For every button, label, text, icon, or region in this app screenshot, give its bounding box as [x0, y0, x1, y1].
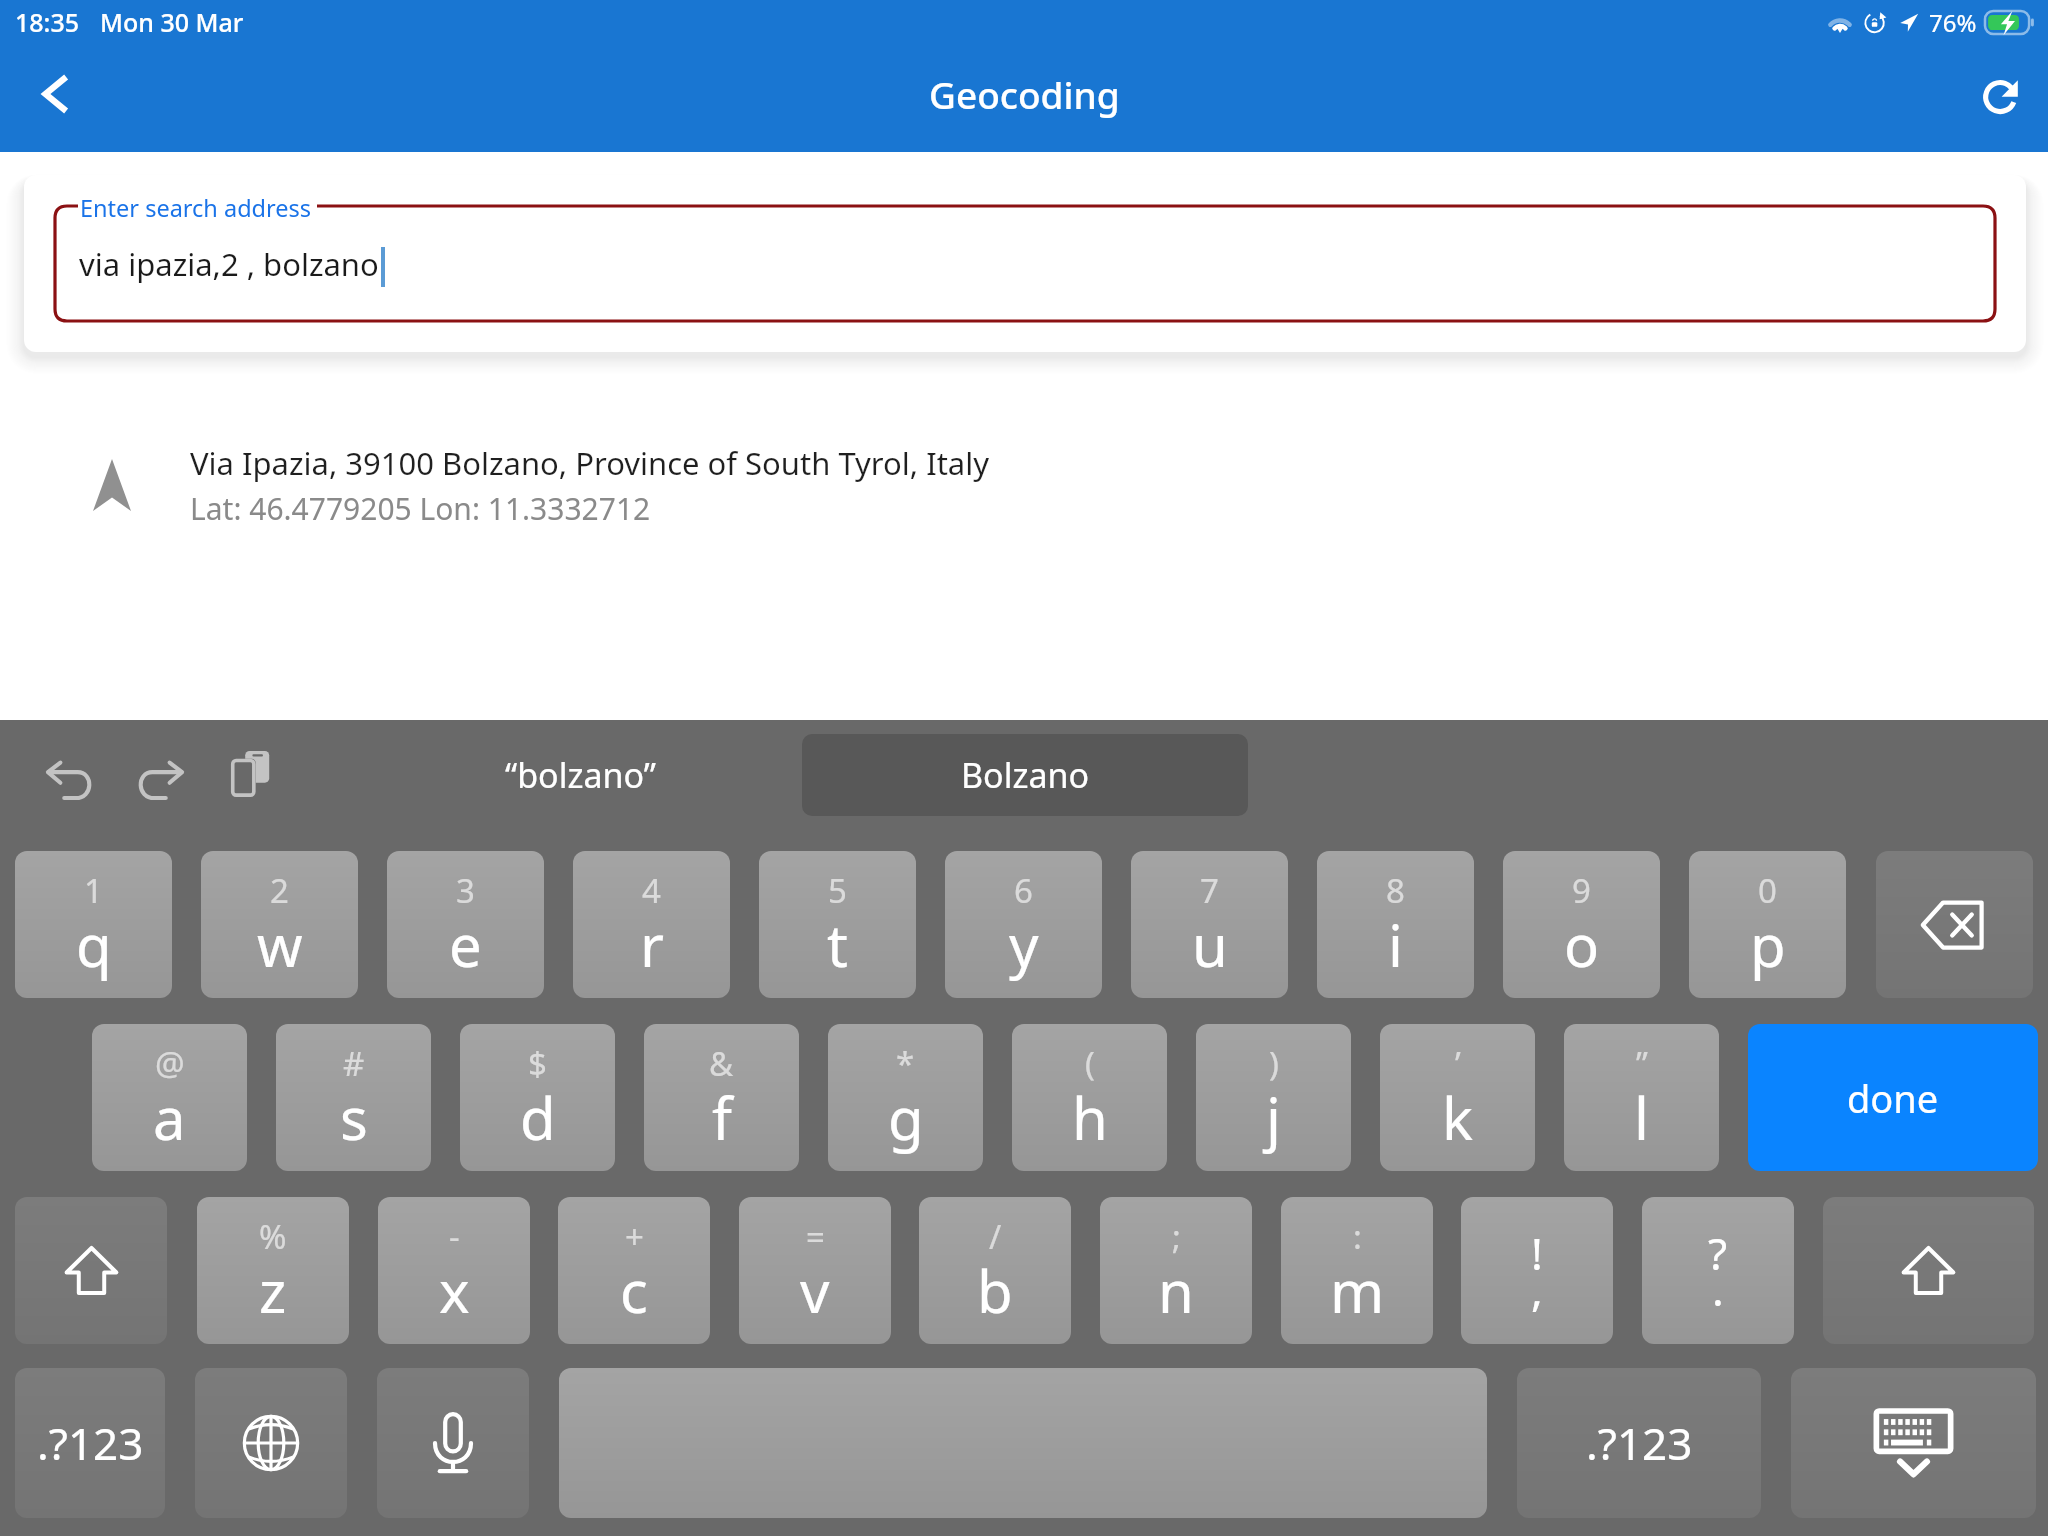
button[interactable]: + — [558, 1197, 710, 1344]
staticText: # — [343, 1041, 365, 1086]
staticText: 7 — [1200, 868, 1219, 913]
button[interactable]: .?123 — [15, 1368, 165, 1518]
staticText: ; — [1172, 1214, 1181, 1259]
button[interactable]: 4 — [573, 851, 730, 998]
button[interactable]: * — [828, 1024, 983, 1171]
staticText: - — [449, 1214, 460, 1259]
button[interactable]: ) — [1196, 1024, 1351, 1171]
button[interactable]: - — [378, 1197, 530, 1344]
staticText: . — [1712, 1259, 1724, 1319]
staticText: b — [977, 1251, 1013, 1330]
staticText: .?123 — [37, 1413, 144, 1473]
button[interactable]: ” — [1564, 1024, 1719, 1171]
staticText: .?123 — [1586, 1413, 1693, 1473]
button[interactable]: 6 — [945, 851, 1102, 998]
button[interactable]: ; — [1100, 1197, 1252, 1344]
button[interactable]: Shift — [1823, 1197, 2034, 1344]
staticText: i — [1388, 905, 1403, 984]
staticText: o — [1564, 905, 1600, 984]
button[interactable]: 9 — [1503, 851, 1660, 998]
button[interactable]: Backspace — [1876, 851, 2033, 998]
button[interactable]: “bolzano” — [450, 740, 710, 810]
button[interactable]: = — [739, 1197, 891, 1344]
staticText: j — [1266, 1078, 1281, 1157]
button[interactable]: Change keyboard — [195, 1368, 347, 1518]
staticText: 2 — [270, 868, 289, 913]
button[interactable]: Back — [21, 59, 91, 129]
button[interactable]: Via Ipazia, 39100 Bolzano, Province of S… — [0, 430, 2048, 540]
staticText: u — [1192, 905, 1228, 984]
staticText: 0 — [1758, 868, 1777, 913]
staticText: c — [620, 1251, 648, 1330]
button[interactable]: Redo — [134, 750, 186, 802]
button[interactable]: Space — [559, 1368, 1487, 1518]
staticText: k — [1442, 1078, 1473, 1157]
button[interactable]: $ — [460, 1024, 615, 1171]
button[interactable]: Hide keyboard — [1791, 1368, 2036, 1518]
staticText: 1 — [84, 868, 103, 913]
staticText: $ — [528, 1041, 547, 1086]
staticText: z — [259, 1251, 287, 1330]
button[interactable]: / — [919, 1197, 1071, 1344]
staticText: 76% — [1929, 6, 1977, 39]
staticText: @ — [155, 1041, 185, 1086]
staticText: s — [340, 1078, 368, 1157]
staticText: Lat: 46.4779205 Lon: 11.3332712 — [190, 488, 651, 529]
button[interactable]: ! — [1461, 1197, 1613, 1344]
staticText: h — [1072, 1078, 1108, 1157]
staticText: f — [712, 1078, 732, 1157]
staticText: ? — [1708, 1223, 1728, 1283]
button[interactable]: Bolzano — [802, 734, 1248, 816]
staticText: via ipazia,2 , bolzano — [79, 243, 379, 285]
staticText: t — [827, 905, 848, 984]
staticText: m — [1330, 1251, 1385, 1330]
button[interactable]: ’ — [1380, 1024, 1535, 1171]
staticText: done — [1847, 1072, 1939, 1124]
staticText: 5 — [828, 868, 847, 913]
button[interactable]: # — [276, 1024, 431, 1171]
button[interactable]: Undo — [44, 750, 96, 802]
staticText: Bolzano — [961, 752, 1090, 798]
button[interactable]: Voice input — [377, 1368, 529, 1518]
staticText: 6 — [1014, 868, 1033, 913]
button[interactable]: % — [197, 1197, 349, 1344]
staticText: 18:35 — [15, 5, 80, 39]
staticText: ” — [1636, 1041, 1648, 1086]
button[interactable]: ? — [1642, 1197, 1794, 1344]
button[interactable]: ( — [1012, 1024, 1167, 1171]
button[interactable]: Shift — [15, 1197, 167, 1344]
button[interactable]: 5 — [759, 851, 916, 998]
staticText: ( — [1085, 1041, 1095, 1086]
button[interactable]: 1 — [15, 851, 172, 998]
staticText: , — [1531, 1259, 1543, 1319]
button[interactable]: 0 — [1689, 851, 1846, 998]
button[interactable]: Paste — [224, 748, 276, 800]
staticText: “bolzano” — [505, 752, 656, 798]
staticText: a — [153, 1078, 186, 1157]
button[interactable]: 8 — [1317, 851, 1474, 998]
staticText: 4 — [642, 868, 661, 913]
staticText: Enter search address — [80, 192, 312, 224]
button[interactable]: .?123 — [1517, 1368, 1761, 1518]
staticText: ’ — [1455, 1041, 1461, 1086]
button[interactable]: 7 — [1131, 851, 1288, 998]
staticText: ! — [1531, 1223, 1543, 1283]
button[interactable]: @ — [92, 1024, 247, 1171]
staticText: 8 — [1386, 868, 1405, 913]
staticText: / — [989, 1214, 1002, 1259]
button[interactable]: done — [1748, 1024, 2038, 1171]
staticText: = — [806, 1214, 825, 1259]
button[interactable]: Enter search address — [55, 206, 1995, 321]
button[interactable]: : — [1281, 1197, 1433, 1344]
staticText: * — [896, 1041, 915, 1086]
button[interactable]: 2 — [201, 851, 358, 998]
button[interactable]: & — [644, 1024, 799, 1171]
staticText: x — [439, 1251, 470, 1330]
staticText: n — [1158, 1251, 1194, 1330]
button[interactable]: 3 — [387, 851, 544, 998]
button[interactable]: Refresh — [1966, 59, 2038, 131]
staticText: w — [257, 905, 303, 984]
staticText: 3 — [456, 868, 475, 913]
staticText: r — [640, 905, 664, 984]
staticText: Mon 30 Mar — [100, 5, 244, 39]
